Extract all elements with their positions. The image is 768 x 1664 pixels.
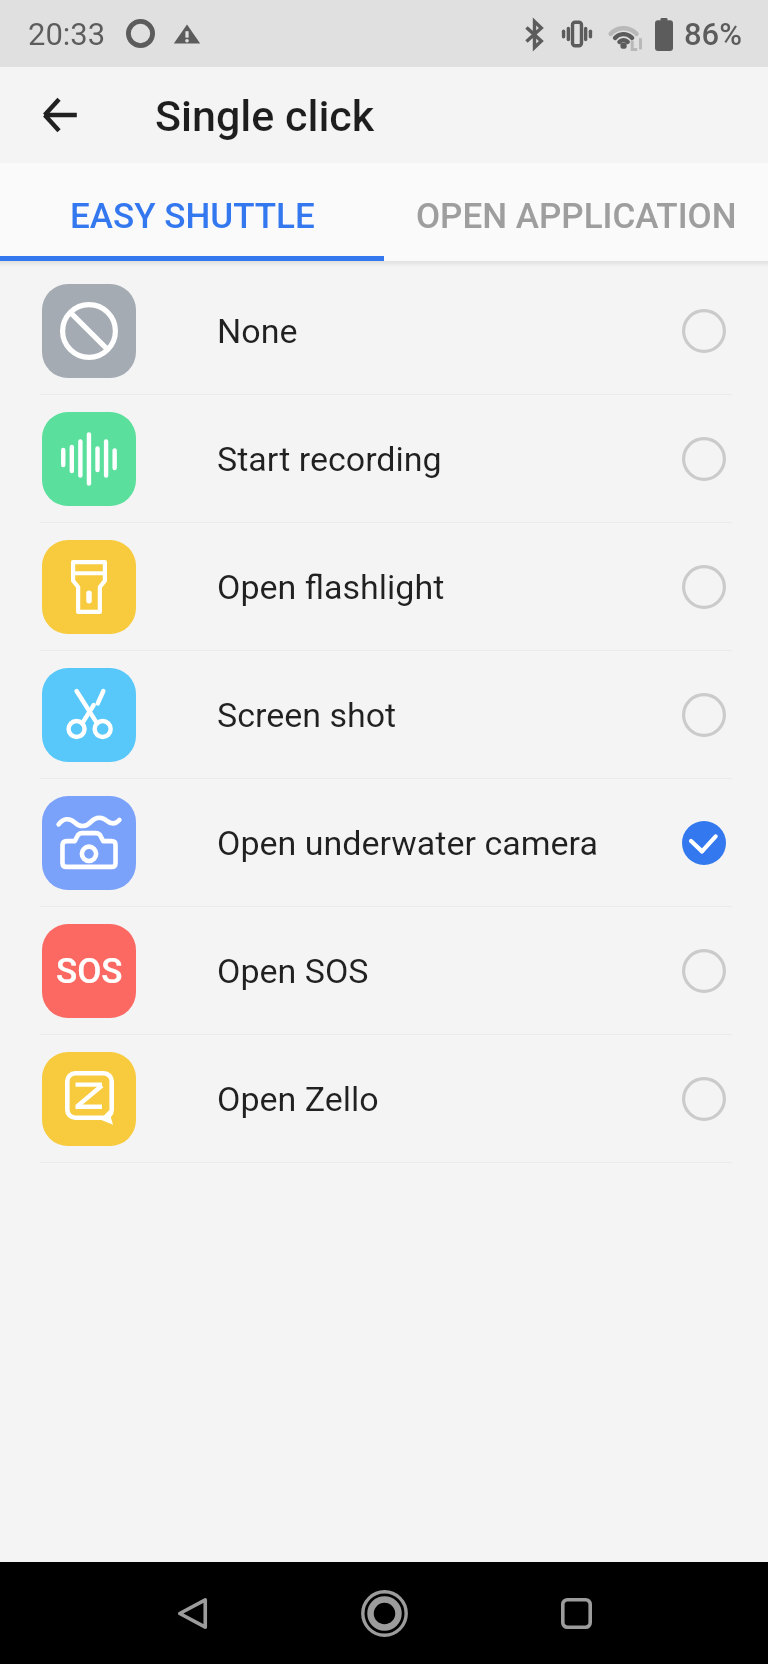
button[interactable]: Open Zello (0, 1035, 768, 1163)
button[interactable]: Navigate up (16, 71, 104, 159)
button[interactable]: None (0, 267, 768, 395)
button[interactable]: EASY SHUTTLE (0, 163, 384, 261)
staticText: Screen shot (217, 695, 397, 735)
staticText: Open SOS (217, 951, 369, 991)
staticText: Open Zello (217, 1079, 379, 1119)
button[interactable]: Home (288, 1562, 480, 1664)
button[interactable]: Back (96, 1562, 288, 1664)
staticText: Open flashlight (217, 567, 445, 607)
button[interactable]: Recent apps (480, 1562, 672, 1664)
button[interactable]: Start recording (0, 395, 768, 523)
staticText: SOS (56, 951, 123, 992)
button[interactable]: Open flashlight (0, 523, 768, 651)
button[interactable]: OPEN APPLICATION (384, 163, 768, 261)
staticText: Open underwater camera (217, 823, 598, 863)
staticText: Start recording (217, 439, 442, 479)
staticText: None (217, 311, 298, 351)
button[interactable]: Open underwater camera (0, 779, 768, 907)
staticText: Single click (155, 91, 375, 141)
staticText: 86% (684, 16, 743, 52)
button[interactable]: Screen shot (0, 651, 768, 779)
button[interactable]: SOS (0, 907, 768, 1035)
staticText: 20:33 (28, 16, 106, 52)
staticText: EASY SHUTTLE (70, 196, 315, 237)
staticText: OPEN APPLICATION (416, 196, 737, 237)
